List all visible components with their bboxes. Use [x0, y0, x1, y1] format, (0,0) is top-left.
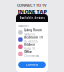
staticText: Living Room [24, 29, 42, 32]
staticText: Roku TV [24, 47, 35, 50]
button[interactable]: Office [16, 50, 48, 57]
staticText: LG webOS [24, 40, 37, 43]
staticText: Samsung [24, 33, 35, 36]
button[interactable]: Connect [16, 62, 48, 72]
staticText: Chromecast [24, 54, 39, 58]
staticText: Connect [26, 63, 38, 66]
staticText: IN ONE TAP [17, 8, 46, 15]
button[interactable]: Living Room [16, 29, 48, 36]
staticText: Office [24, 50, 32, 54]
staticText: Kitchen [24, 43, 35, 46]
staticText: Bedroom TV [24, 36, 43, 39]
button[interactable]: Bedroom TV [16, 36, 48, 43]
staticText: NEARBY [18, 24, 29, 28]
button[interactable]: Kitchen [16, 43, 48, 50]
staticText: CONNECT TO TV [17, 3, 47, 8]
staticText: Available devices [19, 16, 44, 20]
